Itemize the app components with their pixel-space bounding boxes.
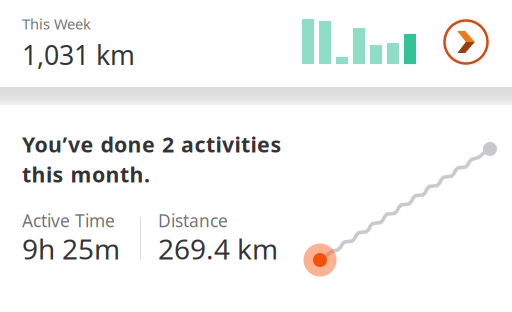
button[interactable]: This Week <box>0 0 434 87</box>
staticText: 1,031 km <box>22 37 135 72</box>
staticText: 269.4 km <box>158 230 278 267</box>
button[interactable]: You’ve done 2 activities <box>0 105 512 312</box>
staticText: Distance <box>158 209 228 232</box>
staticText: 9h 25m <box>22 230 120 267</box>
staticText: this month. <box>22 160 150 188</box>
staticText: You’ve done 2 activities <box>22 130 281 158</box>
button[interactable]: This week details <box>444 20 488 64</box>
staticText: Active Time <box>22 209 115 232</box>
staticText: This Week <box>22 14 91 33</box>
